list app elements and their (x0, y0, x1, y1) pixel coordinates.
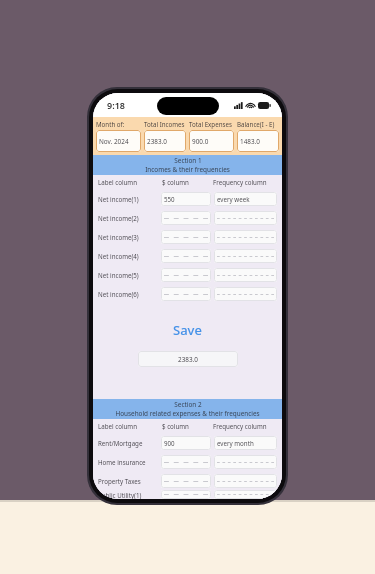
staticText: Label column (98, 422, 162, 430)
button[interactable] (214, 211, 277, 225)
button[interactable] (214, 230, 277, 244)
staticText: Home insurance (98, 458, 161, 466)
button[interactable] (161, 455, 211, 469)
staticText: $ column (162, 178, 213, 186)
staticText: Net income(4) (98, 252, 161, 260)
button[interactable] (214, 474, 277, 488)
staticText: 1483.0 (240, 137, 260, 146)
button[interactable]: every week (214, 192, 277, 206)
button[interactable]: 2383.0 (144, 130, 186, 152)
staticText: Total Expenses (189, 120, 232, 128)
staticText: Total Incomes (144, 120, 185, 128)
button[interactable] (214, 490, 277, 499)
staticText: Frequency column (213, 422, 277, 430)
button[interactable] (161, 230, 211, 244)
staticText: Balance(I - E) (237, 120, 275, 128)
staticText: Net income(1) (98, 195, 161, 203)
staticText: Public Utility(1) (98, 491, 161, 499)
button[interactable] (214, 249, 277, 263)
staticText: Rent/Mortgage (98, 439, 161, 447)
button[interactable] (161, 287, 211, 301)
staticText: Save (173, 321, 202, 339)
button[interactable] (161, 490, 211, 499)
staticText: Net income(3) (98, 233, 161, 241)
staticText: 550 (164, 195, 175, 203)
button[interactable] (214, 455, 277, 469)
button[interactable]: 900 (161, 436, 211, 450)
staticText: Net income(5) (98, 271, 161, 279)
staticText: Section 1 (174, 156, 202, 165)
staticText: Month of: (96, 120, 125, 128)
staticText: $ column (162, 422, 213, 430)
button[interactable]: 900.0 (189, 130, 234, 152)
button[interactable]: Save (167, 319, 208, 341)
staticText: Label column (98, 178, 162, 186)
staticText: Section 2 (174, 400, 202, 409)
staticText: Nov. 2024 (99, 137, 129, 146)
button[interactable] (214, 268, 277, 282)
staticText: Frequency column (213, 178, 277, 186)
staticText: 900.0 (192, 137, 209, 146)
staticText: Incomes & their frequencies (145, 165, 230, 174)
button[interactable]: Nov. 2024 (96, 130, 141, 152)
staticText: every week (217, 195, 250, 203)
button[interactable] (161, 211, 211, 225)
staticText: 9:18 (107, 99, 125, 111)
button[interactable]: 550 (161, 192, 211, 206)
staticText: Property Taxes (98, 477, 161, 485)
staticText: Net income(6) (98, 290, 161, 298)
staticText: every month (217, 439, 254, 447)
staticText: 2383.0 (147, 137, 167, 146)
staticText: Household related expenses & their frequ… (115, 409, 260, 418)
button[interactable] (161, 474, 211, 488)
button[interactable] (161, 249, 211, 263)
button[interactable]: every month (214, 436, 277, 450)
staticText: Net income(2) (98, 214, 161, 222)
staticText: 2383.0 (178, 355, 198, 364)
button[interactable]: 1483.0 (237, 130, 279, 152)
button[interactable]: 2383.0 (138, 351, 238, 367)
button[interactable] (214, 287, 277, 301)
staticText: 900 (164, 439, 175, 447)
button[interactable] (161, 268, 211, 282)
